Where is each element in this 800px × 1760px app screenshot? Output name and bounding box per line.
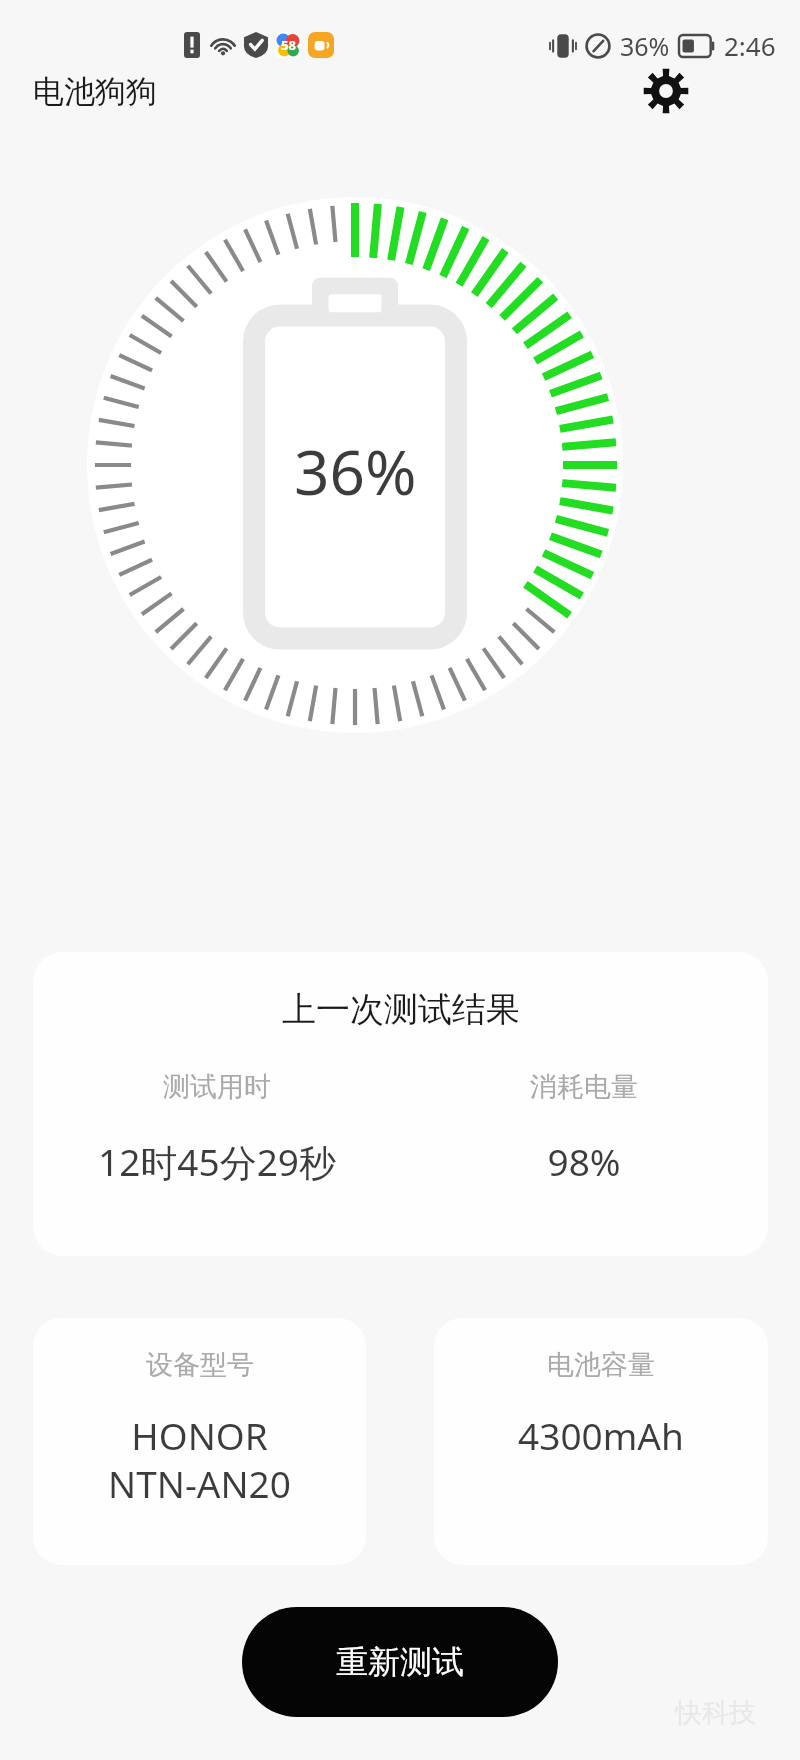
staticText: 消耗电量 bbox=[530, 1070, 638, 1104]
staticText: 4300mAh bbox=[518, 1410, 684, 1460]
staticText: HONOR NTN-AN20 bbox=[108, 1410, 291, 1509]
staticText: 电池狗狗 bbox=[33, 72, 157, 111]
staticText: 58 bbox=[281, 36, 296, 54]
button[interactable]: Settings bbox=[640, 65, 692, 117]
staticText: 98% bbox=[547, 1136, 621, 1186]
button[interactable]: 重新测试 bbox=[242, 1607, 558, 1717]
staticText: 12时45分29秒 bbox=[98, 1136, 336, 1187]
button[interactable]: 电池容量 bbox=[434, 1318, 768, 1565]
button[interactable]: 上一次测试结果 bbox=[33, 952, 768, 1256]
staticText: 快科技 bbox=[675, 1696, 756, 1730]
button[interactable]: 设备型号 bbox=[33, 1318, 366, 1565]
staticText: 36% bbox=[294, 429, 417, 513]
staticText: 电池容量 bbox=[547, 1348, 655, 1382]
staticText: 36% bbox=[620, 29, 670, 63]
staticText: 设备型号 bbox=[146, 1348, 254, 1382]
staticText: 重新测试 bbox=[336, 1642, 464, 1682]
staticText: 上一次测试结果 bbox=[282, 988, 520, 1031]
staticText: 2:46 bbox=[724, 28, 776, 63]
staticText: 测试用时 bbox=[163, 1070, 271, 1104]
